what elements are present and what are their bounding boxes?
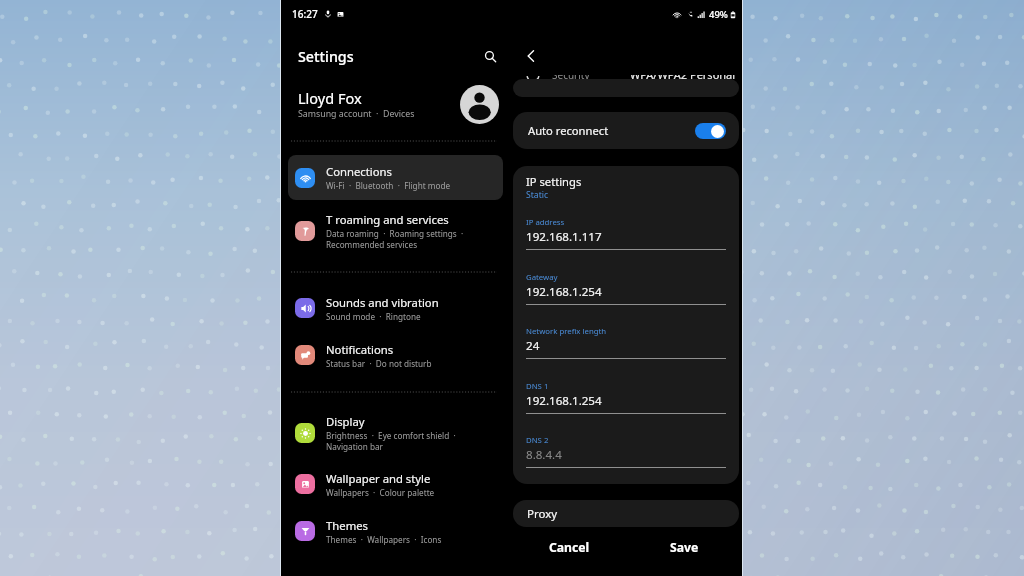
staticText: Notifications [326, 342, 394, 357]
staticText: 192.168.1.117 [526, 229, 602, 245]
staticText: Data roaming · Roaming settings · Recomm… [326, 228, 464, 250]
staticText: 8.8.4.4 [526, 447, 562, 463]
button[interactable]: Cancel [513, 531, 626, 563]
button[interactable]: IP address [526, 217, 726, 250]
staticText: Cancel [549, 539, 590, 556]
staticText: Brightness · Eye comfort shield · Naviga… [326, 430, 456, 452]
staticText: Gateway [526, 272, 558, 283]
staticText: Status bar · Do not disturb [326, 358, 432, 369]
staticText: Wallpapers · Colour palette [326, 487, 435, 498]
button[interactable]: Network prefix length [526, 326, 726, 359]
button[interactable]: DNS 2 [526, 435, 726, 468]
staticText: 192.168.1.254 [526, 284, 602, 300]
button[interactable]: DNS 1 [526, 381, 726, 414]
staticText: Network prefix length [526, 326, 607, 337]
button[interactable]: Wallpaper and style [288, 466, 503, 502]
staticText: DNS 2 [526, 435, 549, 446]
staticText: Connections [326, 164, 392, 179]
button[interactable]: Lloyd Fox [281, 80, 497, 130]
staticText: Settings [298, 47, 354, 66]
staticText: Themes · Wallpapers · Icons [326, 534, 442, 545]
staticText: Lloyd Fox [298, 88, 362, 108]
button[interactable]: Search [478, 44, 502, 68]
button[interactable]: Display [288, 410, 503, 456]
staticText: Wi-Fi · Bluetooth · Flight mode [326, 180, 451, 191]
button[interactable]: Notifications [288, 337, 503, 373]
staticText: IP address [526, 217, 565, 228]
staticText: Sound mode · Ringtone [326, 311, 421, 322]
staticText: 24 [526, 338, 540, 354]
staticText: Save [670, 539, 699, 556]
button[interactable]: Sounds and vibration [288, 290, 503, 326]
staticText: WPA/WPA2 Personal [630, 67, 736, 82]
button[interactable]: Connections [288, 155, 503, 200]
staticText: Auto reconnect [528, 123, 609, 138]
staticText: IP settings [526, 174, 582, 189]
staticText: Samsung account · Devices [298, 108, 415, 120]
button[interactable]: Proxy [513, 500, 739, 527]
button[interactable]: Auto reconnect toggle, on [695, 123, 726, 139]
button[interactable]: Themes [288, 513, 503, 549]
staticText: DNS 1 [526, 381, 549, 392]
button[interactable]: Auto reconnect [513, 112, 739, 149]
button[interactable]: Gateway [526, 272, 726, 305]
button[interactable]: Back [519, 44, 543, 68]
staticText: Display [326, 414, 365, 429]
staticText: Static [526, 189, 549, 201]
button[interactable]: Save [628, 531, 741, 563]
staticText: Sounds and vibration [326, 295, 439, 310]
staticText: 49% [709, 8, 728, 21]
staticText: Wallpaper and style [326, 471, 431, 486]
staticText: T roaming and services [326, 212, 449, 227]
staticText: 16:27 [292, 7, 318, 21]
staticText: Security [552, 68, 590, 82]
button[interactable]: T roaming and services [288, 207, 503, 255]
staticText: Proxy [527, 506, 558, 522]
staticText: 192.168.1.254 [526, 393, 602, 409]
staticText: Themes [326, 518, 368, 533]
